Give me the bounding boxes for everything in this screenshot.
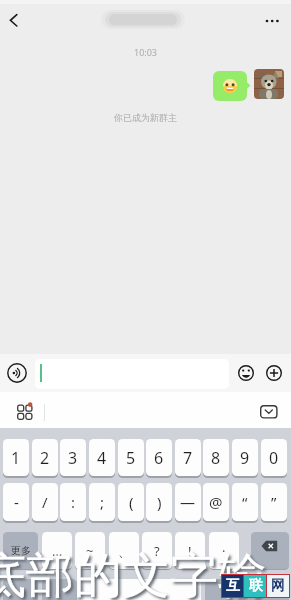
staticText: 6 — [154, 447, 164, 469]
button[interactable]: 4 — [89, 439, 115, 476]
staticText: / — [42, 492, 48, 512]
button[interactable]: · — [209, 532, 239, 569]
staticText: ( — [129, 492, 134, 512]
button[interactable] — [4, 360, 30, 386]
staticText: 更多 — [11, 544, 31, 557]
staticText: 4 — [97, 447, 107, 469]
staticText: 、 — [118, 543, 131, 559]
staticText: — — [180, 492, 196, 512]
staticText: 5 — [126, 447, 136, 469]
button[interactable] — [249, 579, 289, 600]
staticText: ; — [100, 492, 105, 512]
staticText: 网 — [271, 577, 285, 595]
staticText: 8 — [211, 447, 221, 469]
button[interactable]: ? — [142, 532, 172, 569]
button[interactable] — [8, 398, 42, 424]
staticText: 联 — [249, 577, 263, 595]
button[interactable]: / — [32, 483, 58, 521]
button[interactable]: - — [3, 483, 29, 521]
button[interactable] — [254, 69, 284, 99]
button[interactable]: — — [175, 483, 201, 521]
button[interactable] — [81, 579, 201, 600]
button[interactable]: 3 — [60, 439, 86, 476]
staticText: ) — [157, 492, 162, 512]
button[interactable]: … — [42, 532, 72, 569]
staticText: 7 — [183, 447, 193, 469]
button[interactable] — [42, 579, 77, 600]
button[interactable]: 9 — [232, 439, 258, 476]
staticText: @ — [209, 492, 223, 512]
staticText: ” — [271, 492, 277, 512]
button[interactable]: 2 — [32, 439, 58, 476]
button[interactable]: 1 — [3, 439, 29, 476]
staticText: 10:03 — [134, 46, 158, 58]
button[interactable] — [262, 361, 286, 385]
button[interactable] — [258, 6, 288, 34]
staticText: : — [71, 492, 76, 512]
staticText: ? — [154, 542, 160, 560]
button[interactable]: 互 — [222, 575, 243, 597]
button[interactable]: ) — [146, 483, 172, 521]
button[interactable]: @ — [203, 483, 229, 521]
button[interactable]: : — [60, 483, 86, 521]
staticText: 底部的文字输入框 — [0, 546, 269, 600]
button[interactable] — [0, 0, 40, 38]
button[interactable]: 5 — [118, 439, 144, 476]
staticText: 2 — [40, 447, 50, 469]
button[interactable]: 、 — [109, 532, 139, 569]
staticText: ~ — [86, 542, 94, 560]
button[interactable]: ( — [118, 483, 144, 521]
button[interactable]: 0 — [261, 439, 287, 476]
button[interactable] — [3, 579, 38, 600]
staticText: ! — [188, 542, 192, 560]
staticText: 互 — [226, 577, 240, 595]
button[interactable]: 8 — [203, 439, 229, 476]
staticText: - — [14, 492, 19, 512]
button[interactable] — [251, 532, 289, 569]
button[interactable]: ~ — [75, 532, 105, 569]
button[interactable]: ! — [175, 532, 205, 569]
button[interactable] — [205, 579, 245, 600]
staticText: “ — [242, 492, 248, 512]
button[interactable] — [234, 361, 258, 385]
button[interactable] — [35, 359, 229, 389]
button[interactable]: “ — [232, 483, 258, 521]
staticText: · — [222, 542, 226, 560]
button[interactable]: 7 — [175, 439, 201, 476]
button[interactable] — [213, 71, 247, 101]
staticText: 3 — [68, 447, 78, 469]
button[interactable]: 6 — [146, 439, 172, 476]
button[interactable]: ” — [261, 483, 287, 521]
button[interactable]: 更多 — [3, 532, 38, 569]
button[interactable]: ; — [89, 483, 115, 521]
staticText: … — [52, 542, 63, 560]
staticText: 9 — [240, 447, 250, 469]
staticText: 1 — [11, 447, 21, 469]
button[interactable] — [255, 400, 283, 424]
staticText: 0 — [269, 447, 279, 469]
staticText: 你已成为新群主 — [114, 112, 177, 123]
